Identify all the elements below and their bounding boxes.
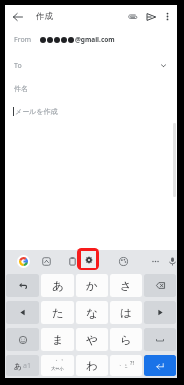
- button[interactable]: Back: [8, 5, 27, 28]
- button[interactable]: Settings: [77, 248, 99, 270]
- staticText: a1: [23, 361, 31, 371]
- staticText: わ: [86, 359, 98, 373]
- button[interactable]: ま: [41, 328, 74, 351]
- button[interactable]: た: [41, 301, 74, 324]
- staticText: From: [14, 35, 32, 45]
- button[interactable]: は: [110, 301, 142, 324]
- staticText: あ: [52, 279, 64, 293]
- button[interactable]: [144, 274, 176, 297]
- button[interactable]: [144, 328, 176, 351]
- button[interactable]: メールを作成: [5, 100, 177, 123]
- button[interactable]: 、。?!: [110, 355, 142, 376]
- staticText: 件名: [14, 84, 28, 93]
- staticText: さ: [120, 279, 132, 293]
- button[interactable]: あ: [41, 274, 74, 297]
- staticText: 、。?!: [119, 359, 134, 367]
- button[interactable]: More: [146, 250, 164, 272]
- staticText: ゛゜: [52, 359, 64, 366]
- button[interactable]: ら: [110, 328, 142, 351]
- button[interactable]: From: [5, 28, 177, 51]
- staticText: や: [86, 333, 98, 347]
- staticText: メールを作成: [15, 107, 58, 116]
- button[interactable]: か: [76, 274, 108, 297]
- staticText: は: [120, 306, 132, 320]
- staticText: か: [86, 279, 98, 293]
- staticText: 大⇔小: [51, 366, 64, 372]
- staticText: ‾: [125, 367, 128, 373]
- button[interactable]: や: [76, 328, 108, 351]
- staticText: た: [52, 306, 64, 320]
- button[interactable]: [6, 274, 39, 297]
- button[interactable]: [144, 301, 176, 324]
- button[interactable]: ゛゜: [41, 355, 74, 376]
- button[interactable]: Send: [141, 5, 160, 28]
- staticText: ら: [120, 333, 132, 347]
- button[interactable]: Enter: [144, 355, 176, 376]
- button[interactable]: Attach file: [123, 5, 142, 28]
- staticText: あ: [14, 361, 23, 371]
- button[interactable]: [6, 328, 39, 351]
- button[interactable]: な: [76, 301, 108, 324]
- staticText: 作成: [36, 11, 53, 22]
- button[interactable]: Voice input: [168, 250, 177, 272]
- button[interactable]: Google: [14, 250, 32, 272]
- staticText: な: [86, 306, 98, 320]
- button[interactable]: さ: [110, 274, 142, 297]
- button[interactable]: 件名: [5, 77, 177, 100]
- staticText: To: [14, 61, 22, 71]
- button[interactable]: あ: [6, 355, 39, 376]
- button[interactable]: Theme: [114, 250, 132, 272]
- button[interactable]: To: [5, 54, 177, 77]
- button[interactable]: Stickers: [37, 250, 55, 272]
- button[interactable]: わ: [76, 355, 108, 376]
- button[interactable]: Clipboard: [63, 250, 81, 272]
- staticText: @gmail.com: [75, 35, 115, 44]
- button[interactable]: More options: [159, 5, 176, 28]
- button[interactable]: [6, 301, 39, 324]
- staticText: ま: [52, 333, 64, 347]
